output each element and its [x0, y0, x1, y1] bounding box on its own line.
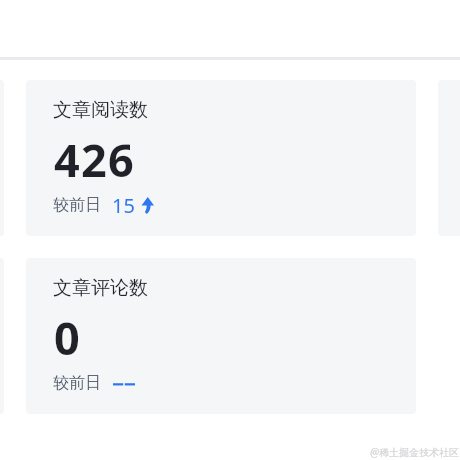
staticText: 较前日 [53, 195, 101, 215]
staticText: 0 [54, 307, 82, 368]
button[interactable]: 文章阅读数 [26, 80, 416, 236]
button[interactable]: 文章评论数 [26, 258, 416, 414]
staticText: 文章评论数 [53, 276, 148, 300]
staticText: 较前日 [53, 373, 101, 393]
staticText: 文章阅读数 [53, 98, 148, 122]
staticText: 426 [54, 129, 136, 190]
staticText: @稀土掘金技术社区 [370, 445, 460, 459]
other: 无变化数据 [113, 371, 135, 388]
staticText: 15 [112, 192, 135, 219]
other: 上升 [141, 197, 154, 214]
